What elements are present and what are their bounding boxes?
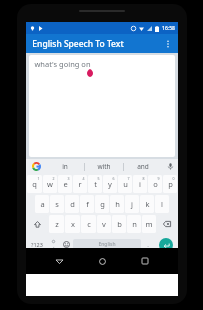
- button[interactable]: and: [124, 159, 162, 174]
- staticText: p: [168, 179, 173, 189]
- button[interactable]: ?123: [27, 235, 47, 254]
- button[interactable]: d: [65, 195, 79, 213]
- button[interactable]: with: [85, 159, 123, 174]
- staticText: what's going on: [34, 59, 91, 69]
- staticText: y: [108, 179, 112, 189]
- button[interactable]: 4: [73, 175, 87, 193]
- staticText: 2: [52, 176, 55, 181]
- button[interactable]: Comma: [48, 235, 59, 254]
- staticText: a: [40, 199, 45, 209]
- button[interactable]: n: [127, 215, 141, 233]
- staticText: 16:58: [162, 25, 175, 32]
- staticText: 6: [112, 176, 115, 181]
- staticText: k: [145, 199, 150, 209]
- staticText: and: [137, 162, 149, 171]
- button[interactable]: 0: [163, 175, 177, 193]
- button[interactable]: Back: [49, 251, 69, 271]
- staticText: x: [71, 219, 75, 229]
- button[interactable]: More options: [161, 37, 175, 51]
- button[interactable]: 8: [133, 175, 147, 193]
- staticText: with: [97, 162, 111, 171]
- button[interactable]: z: [49, 215, 64, 233]
- button[interactable]: 1: [27, 175, 42, 193]
- staticText: in: [62, 162, 68, 171]
- staticText: j: [131, 199, 133, 209]
- staticText: t: [94, 179, 97, 189]
- button[interactable]: 7: [118, 175, 132, 193]
- button[interactable]: 9: [148, 175, 162, 193]
- staticText: ,: [53, 243, 55, 250]
- button[interactable]: Shift: [27, 215, 48, 233]
- button[interactable]: h: [110, 195, 124, 213]
- button[interactable]: c: [81, 215, 96, 233]
- staticText: u: [123, 179, 128, 189]
- button[interactable]: v: [97, 215, 111, 233]
- button[interactable]: English: [73, 239, 141, 250]
- staticText: 5: [97, 176, 100, 181]
- staticText: f: [86, 199, 89, 209]
- button[interactable]: Period: [142, 235, 154, 254]
- button[interactable]: Voice input: [162, 159, 178, 174]
- button[interactable]: f: [80, 195, 94, 213]
- staticText: h: [115, 199, 120, 209]
- staticText: 7: [127, 176, 130, 181]
- staticText: b: [117, 219, 122, 229]
- button[interactable]: Enter: [155, 235, 177, 254]
- staticText: c: [87, 219, 91, 229]
- staticText: 1: [37, 176, 40, 181]
- button[interactable]: m: [142, 215, 156, 233]
- button[interactable]: Home: [92, 251, 112, 271]
- button[interactable]: x: [65, 215, 80, 233]
- button[interactable]: g: [95, 195, 109, 213]
- staticText: q: [32, 179, 37, 189]
- staticText: i: [139, 179, 141, 189]
- staticText: 0: [172, 176, 175, 181]
- button[interactable]: 2: [43, 175, 57, 193]
- staticText: n: [132, 219, 137, 229]
- staticText: English Speech To Text: [32, 38, 124, 50]
- staticText: m: [145, 219, 153, 229]
- staticText: ?123: [31, 241, 43, 248]
- button[interactable]: s: [50, 195, 64, 213]
- button[interactable]: b: [112, 215, 126, 233]
- staticText: z: [55, 219, 59, 229]
- staticText: .: [147, 241, 149, 249]
- button[interactable]: Backspace: [157, 215, 177, 233]
- button[interactable]: j: [125, 195, 139, 213]
- staticText: e: [63, 179, 68, 189]
- button[interactable]: k: [140, 195, 154, 213]
- button[interactable]: 6: [103, 175, 117, 193]
- button[interactable]: Recent apps: [135, 251, 155, 271]
- staticText: s: [55, 199, 59, 209]
- staticText: 3: [67, 176, 70, 181]
- button[interactable]: a: [35, 195, 49, 213]
- button[interactable]: in: [46, 159, 84, 174]
- staticText: g: [100, 199, 105, 209]
- staticText: English: [98, 241, 116, 248]
- button[interactable]: l: [155, 195, 169, 213]
- button[interactable]: what's going on: [29, 55, 175, 157]
- button[interactable]: Google: [26, 159, 46, 174]
- button[interactable]: 3: [58, 175, 72, 193]
- staticText: w: [47, 179, 53, 189]
- button[interactable]: Emoji: [60, 235, 72, 254]
- staticText: 8: [142, 176, 145, 181]
- staticText: v: [102, 219, 106, 229]
- staticText: 9: [157, 176, 160, 181]
- staticText: l: [161, 199, 163, 209]
- staticText: o: [153, 179, 158, 189]
- staticText: d: [70, 199, 75, 209]
- button[interactable]: 5: [88, 175, 102, 193]
- staticText: 4: [82, 176, 85, 181]
- staticText: r: [78, 179, 82, 189]
